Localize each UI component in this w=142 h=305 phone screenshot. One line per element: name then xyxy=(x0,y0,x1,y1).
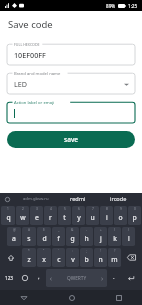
staticText: n xyxy=(98,255,103,264)
staticText: 10EF00FF xyxy=(14,50,46,60)
button[interactable]: 9 xyxy=(114,206,127,225)
staticText: y xyxy=(77,213,81,222)
button[interactable]: , xyxy=(33,269,45,287)
staticText: 123 xyxy=(5,275,13,281)
button[interactable]: + xyxy=(94,227,107,246)
staticText: - xyxy=(86,228,88,232)
button[interactable]: - xyxy=(80,227,93,246)
button[interactable]: $ xyxy=(37,227,51,246)
staticText: l xyxy=(128,234,130,243)
staticText: QWERTY xyxy=(67,275,87,282)
staticText: 9 xyxy=(120,207,122,211)
staticText: 6 xyxy=(78,207,80,211)
other: Keyboard settings xyxy=(5,197,10,202)
staticText: e xyxy=(35,213,39,222)
staticText: s xyxy=(27,234,31,243)
button[interactable]: ; xyxy=(80,248,93,267)
button[interactable]: & xyxy=(66,227,79,246)
button[interactable]: 123 xyxy=(1,269,16,287)
staticText: * xyxy=(28,249,30,253)
staticText: FULL HEXCODE xyxy=(14,42,40,47)
button[interactable]: Recents xyxy=(95,290,142,305)
staticText: ' xyxy=(58,249,59,253)
staticText: x xyxy=(42,255,46,264)
staticText: a xyxy=(12,234,16,243)
staticText: ) xyxy=(128,228,129,232)
staticText: ; xyxy=(86,249,87,253)
button[interactable]: 7 xyxy=(86,206,99,225)
staticText: p xyxy=(132,213,137,222)
staticText: ( xyxy=(114,228,115,232)
staticText: h xyxy=(84,234,89,243)
button[interactable]: adm.gbsw.ru xyxy=(13,193,58,205)
button[interactable]: 3 xyxy=(30,206,43,225)
button[interactable]: 8 xyxy=(100,206,113,225)
staticText: # xyxy=(28,228,31,232)
staticText: u xyxy=(90,213,95,222)
button[interactable]: Emoji xyxy=(17,269,32,287)
staticText: . xyxy=(113,273,115,281)
button[interactable]: Action label or emoji xyxy=(7,99,135,123)
button[interactable]: Enter xyxy=(121,269,141,287)
staticText: & xyxy=(71,228,74,232)
button[interactable]: Brand and model name xyxy=(7,70,135,94)
staticText: 5 xyxy=(64,207,66,211)
button[interactable]: ' xyxy=(52,248,65,267)
staticText: v xyxy=(71,255,75,264)
staticText: 0 xyxy=(134,207,136,211)
staticText: o xyxy=(118,213,123,222)
button[interactable]: redmi xyxy=(58,193,98,205)
button[interactable]: ? xyxy=(108,248,121,267)
staticText: + xyxy=(100,228,102,232)
staticText: c xyxy=(57,255,61,264)
staticText: 89% xyxy=(106,3,116,9)
button[interactable]: * xyxy=(22,248,36,267)
button[interactable]: . xyxy=(108,269,120,287)
button[interactable]: 2 xyxy=(16,206,29,225)
staticText: Action label or emoji xyxy=(14,100,55,106)
other: Open dropdown xyxy=(124,82,129,87)
button[interactable]: Shift xyxy=(1,248,21,267)
button[interactable]: # xyxy=(22,227,36,246)
button[interactable]: ( xyxy=(108,227,121,246)
staticText: Save code xyxy=(8,18,53,31)
button[interactable]: ! xyxy=(94,248,107,267)
button[interactable]: FULL HEXCODE xyxy=(7,41,135,65)
button[interactable]: Backspace xyxy=(122,248,141,267)
button[interactable]: 4 xyxy=(44,206,57,225)
button[interactable]: ) xyxy=(122,227,135,246)
staticText: k xyxy=(113,234,117,243)
staticText: i xyxy=(106,213,108,222)
button[interactable]: 6 xyxy=(72,206,85,225)
button[interactable]: 1 xyxy=(1,206,15,225)
staticText: LED xyxy=(14,79,28,89)
staticText: Brand and model name xyxy=(14,71,61,77)
staticText: 3 xyxy=(36,207,38,211)
button[interactable]: 0 xyxy=(128,206,141,225)
staticText: j xyxy=(100,234,102,243)
button[interactable]: @ xyxy=(7,227,21,246)
staticText: adm.gbsw.ru xyxy=(23,196,49,202)
button[interactable]: : xyxy=(66,248,79,267)
staticText: , xyxy=(38,273,40,281)
button[interactable]: " xyxy=(37,248,51,267)
staticText: f xyxy=(57,234,60,243)
staticText: 2 xyxy=(22,207,24,211)
button[interactable]: Space xyxy=(46,269,107,287)
staticText: q xyxy=(6,213,11,222)
button[interactable]: Home xyxy=(48,290,95,305)
staticText: w xyxy=(20,213,26,222)
button[interactable]: Back xyxy=(0,290,48,305)
staticText: _ xyxy=(58,228,60,232)
staticText: b xyxy=(84,255,89,264)
staticText: g xyxy=(70,234,75,243)
staticText: save xyxy=(64,135,79,144)
button[interactable]: _ xyxy=(52,227,65,246)
button[interactable]: 5 xyxy=(58,206,71,225)
staticText: ! xyxy=(100,249,101,253)
button[interactable]: save xyxy=(7,131,135,148)
button[interactable]: ircode xyxy=(98,193,138,205)
staticText: ? xyxy=(114,249,116,253)
staticText: m xyxy=(111,255,118,264)
staticText: z xyxy=(27,255,31,264)
